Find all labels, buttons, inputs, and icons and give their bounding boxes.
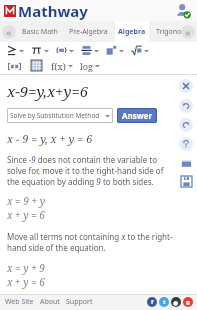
button[interactable]: Greater than or equal <box>6 45 24 56</box>
staticText: x − 9 = y, x + y = 6 <box>7 131 93 146</box>
button[interactable]: Facebook <box>147 297 157 307</box>
button[interactable]: Web Site <box>5 297 34 307</box>
staticText: « <box>6 26 12 38</box>
button[interactable]: Algebra <box>115 21 149 42</box>
staticText: x = y + 9 <box>7 261 45 275</box>
button[interactable]: Pre-Algebra <box>66 21 111 42</box>
staticText: x + y = 6 <box>7 275 45 289</box>
button[interactable]: Basic Math <box>19 21 61 42</box>
button[interactable]: Fraction <box>81 45 99 56</box>
button[interactable]: Square root <box>131 45 149 56</box>
button[interactable]: Trigonomet <box>153 21 197 42</box>
button[interactable]: Matrix <box>6 60 22 72</box>
staticText: x−9=y,x+y=6 <box>7 81 89 101</box>
button[interactable]: f(x) <box>51 60 73 72</box>
button[interactable]: Undo <box>179 99 193 113</box>
staticText: t <box>163 298 166 306</box>
staticText: f <box>151 298 154 306</box>
button[interactable]: Redo <box>179 118 193 132</box>
staticText: Web Site <box>5 297 34 307</box>
staticText: log <box>80 60 93 72</box>
button[interactable]: Save <box>181 176 192 187</box>
button[interactable]: Parentheses <box>56 45 74 56</box>
button[interactable]: Instagram <box>171 297 181 307</box>
staticText: Trigonomet <box>156 27 194 37</box>
staticText: Support <box>66 297 93 307</box>
button[interactable]: About <box>40 297 60 307</box>
staticText: f(x) <box>51 60 66 72</box>
staticText: Since −9 does not contain the variable t… <box>7 154 173 187</box>
button[interactable]: Exponent <box>106 45 124 56</box>
staticText: About <box>40 297 60 307</box>
staticText: g <box>186 298 190 306</box>
staticText: Solve by Substitution Method <box>10 111 105 120</box>
button[interactable]: Previous categories <box>2 25 16 39</box>
button[interactable]: More categories <box>181 25 195 39</box>
button[interactable]: Twitter <box>159 297 169 307</box>
button[interactable]: Solve by Substitution Method <box>7 108 113 123</box>
button[interactable]: Close <box>179 79 193 93</box>
button[interactable]: Account <box>175 3 191 19</box>
button[interactable]: Support <box>66 297 93 307</box>
button[interactable]: Google Plus <box>183 297 193 307</box>
staticText: Basic Math <box>22 27 58 37</box>
button[interactable]: Answer <box>117 108 157 123</box>
staticText: x + y = 6 <box>7 208 45 222</box>
staticText: Algebra <box>118 27 146 37</box>
staticText: Move all terms not containing x to the r… <box>7 231 173 253</box>
button[interactable]: log <box>80 60 100 72</box>
button[interactable]: Help <box>179 137 193 151</box>
staticText: Mathway <box>18 1 88 21</box>
staticText: Answer <box>122 110 152 121</box>
staticText: x = 9 + y <box>7 194 45 208</box>
staticText: Pre-Algebra <box>69 27 108 37</box>
staticText: » <box>185 26 191 38</box>
button[interactable]: Table <box>28 59 44 72</box>
button[interactable]: Notes <box>181 158 192 169</box>
button[interactable]: Mathway <box>4 1 88 21</box>
staticText: ● <box>173 299 179 306</box>
button[interactable]: Pi <box>31 45 49 56</box>
